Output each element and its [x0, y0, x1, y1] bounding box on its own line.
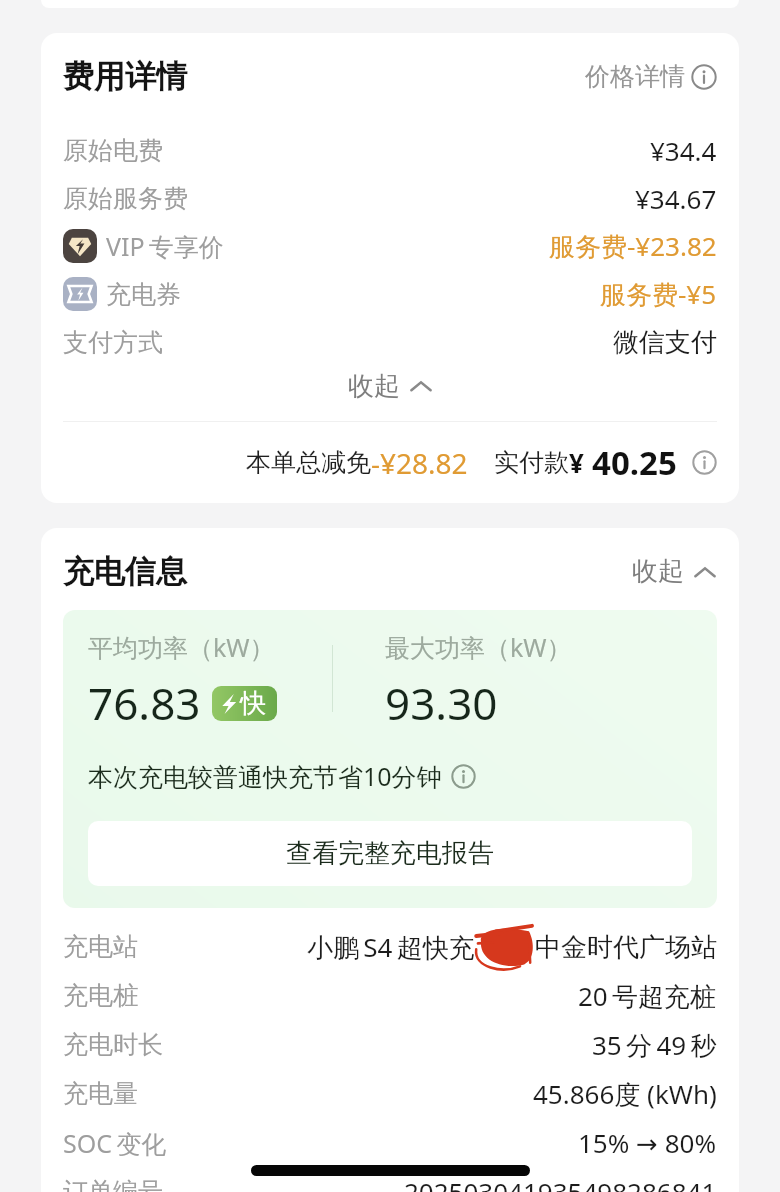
staticText: 202503041935498286841 [404, 1174, 717, 1192]
staticText: 价格详情 [585, 61, 685, 92]
staticText: 微信支付 [613, 326, 717, 359]
staticText: 收起 [348, 370, 400, 403]
staticText: 小鹏 S4 超快充 [307, 929, 475, 965]
staticText: 中金时代广场站 [535, 931, 717, 964]
button[interactable]: 充电时长 [63, 1020, 717, 1069]
staticText: 原始电费 [63, 135, 163, 166]
button[interactable]: 充电桩 [63, 971, 717, 1020]
staticText: ¥34.4 [650, 133, 717, 168]
button[interactable]: 订单编号 [63, 1167, 717, 1192]
staticText: ¥34.67 [635, 181, 717, 216]
staticText: 40.25 [592, 440, 677, 485]
button[interactable]: 支付方式 [63, 318, 717, 367]
staticText: 充电券 [106, 279, 181, 310]
staticText: 收起 [632, 555, 684, 588]
staticText: ¥ [569, 445, 584, 480]
staticText: VIP 专享价 [106, 229, 224, 263]
button[interactable]: 实付款说明 [692, 450, 717, 475]
button[interactable]: SOC 变化 [63, 1118, 717, 1167]
staticText: 原始服务费 [63, 183, 188, 214]
staticText: 20 号超充桩 [578, 978, 717, 1014]
staticText: 充电量 [63, 1078, 138, 1109]
staticText: 充电信息 [63, 552, 187, 591]
button[interactable]: 查看完整充电报告 [88, 821, 692, 886]
button[interactable]: 原始电费 [63, 126, 717, 174]
staticText: 15% → 80% [578, 1125, 717, 1160]
staticText: 充电桩 [63, 980, 138, 1011]
button[interactable]: VIP 专享价 [63, 222, 717, 270]
staticText: 76.83 [88, 673, 201, 733]
staticText: 本单总减免 [246, 447, 371, 478]
button[interactable]: 充电量 [63, 1069, 717, 1118]
staticText: 35 分 49 秒 [592, 1027, 717, 1063]
staticText: 93.30 [385, 673, 498, 733]
button[interactable]: 充电券 [63, 270, 717, 318]
button[interactable]: 节省时间说明 [451, 764, 476, 789]
staticText: -¥28.82 [371, 444, 468, 482]
button[interactable]: 充电站 [63, 922, 717, 971]
staticText: 快 [240, 687, 266, 720]
staticText: 订单编号 [63, 1176, 163, 1192]
staticText: 费用详情 [63, 57, 187, 96]
button[interactable]: 收起 [63, 367, 717, 405]
staticText: 支付方式 [63, 327, 163, 358]
staticText: 本次充电较普通快充节省10分钟 [88, 759, 442, 793]
staticText: 充电站 [63, 931, 138, 962]
button[interactable]: 原始服务费 [63, 174, 717, 222]
button[interactable]: 价格详情 [585, 61, 717, 92]
staticText: 45.866度 (kWh) [533, 1076, 717, 1112]
staticText: 服务费-¥23.82 [549, 228, 717, 264]
staticText: 充电时长 [63, 1029, 163, 1060]
staticText: 查看完整充电报告 [286, 837, 494, 870]
staticText: 最大功率（kW） [385, 630, 572, 664]
staticText: 服务费-¥5 [600, 276, 717, 312]
button[interactable]: 收起 [632, 555, 717, 588]
staticText: SOC 变化 [63, 1126, 167, 1160]
staticText: 平均功率（kW） [88, 630, 275, 664]
staticText: 实付款 [494, 447, 569, 478]
